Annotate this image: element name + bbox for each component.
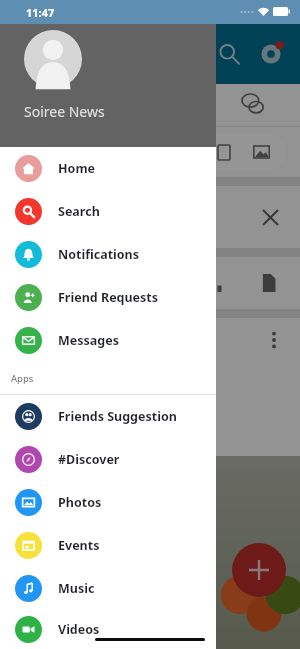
button[interactable]: Friend Requests — [0, 276, 216, 319]
staticText: Events — [58, 537, 100, 554]
button[interactable]: Dismiss — [263, 210, 278, 225]
button[interactable]: Music — [0, 567, 216, 610]
button[interactable]: #Discover — [0, 438, 216, 481]
staticText: Videos — [58, 621, 100, 638]
staticText: Soiree News — [24, 102, 105, 121]
staticText: Friend Requests — [58, 289, 159, 306]
staticText: 11:47 — [26, 5, 55, 20]
staticText: Messages — [58, 332, 119, 349]
staticText: Photos — [58, 494, 102, 511]
button[interactable]: Events — [0, 524, 216, 567]
staticText: labourers are few: pray ye therefore tha… — [14, 392, 173, 448]
button[interactable]: Create post — [232, 543, 286, 597]
button[interactable]: Search — [0, 190, 216, 233]
staticText: Music — [58, 580, 95, 597]
staticText: Search — [58, 203, 100, 220]
staticText: Friends Suggestion — [58, 408, 177, 425]
staticText: Apps — [11, 372, 34, 385]
button[interactable]: Home — [0, 147, 216, 190]
button[interactable]: Messages — [0, 319, 216, 362]
staticText: #Discover — [58, 451, 120, 468]
button[interactable]: Videos — [0, 610, 216, 649]
button[interactable]: Search — [208, 33, 250, 75]
button[interactable]: Photos — [0, 481, 216, 524]
staticText: The Lord of the harvest — [14, 362, 156, 380]
button[interactable]: More options — [272, 332, 276, 348]
button[interactable]: Notifications — [0, 233, 216, 276]
button[interactable]: Notifications — [250, 33, 292, 75]
staticText: Home — [58, 160, 96, 177]
button[interactable]: Friends Suggestion — [0, 395, 216, 438]
staticText: Notifications — [58, 246, 140, 263]
